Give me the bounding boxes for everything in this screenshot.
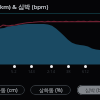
staticText: 38 — [66, 69, 71, 74]
staticText: 5.2 — [11, 69, 17, 74]
staticText: 심박 (bpm) — [85, 87, 100, 94]
staticText: 상하동 (cm) — [0, 87, 18, 94]
staticText: 143 — [28, 69, 35, 74]
staticText: 2:14 — [47, 69, 55, 74]
button[interactable]: 상하동 (%) — [30, 85, 71, 95]
staticText: km) & 심박 (bpm) — [0, 3, 49, 11]
button[interactable]: 상하동 (cm) — [0, 85, 25, 95]
staticText: 상하동 (%) — [39, 87, 63, 94]
button[interactable]: 심박 (bpm) — [77, 85, 100, 95]
staticText: 612 — [82, 69, 89, 74]
